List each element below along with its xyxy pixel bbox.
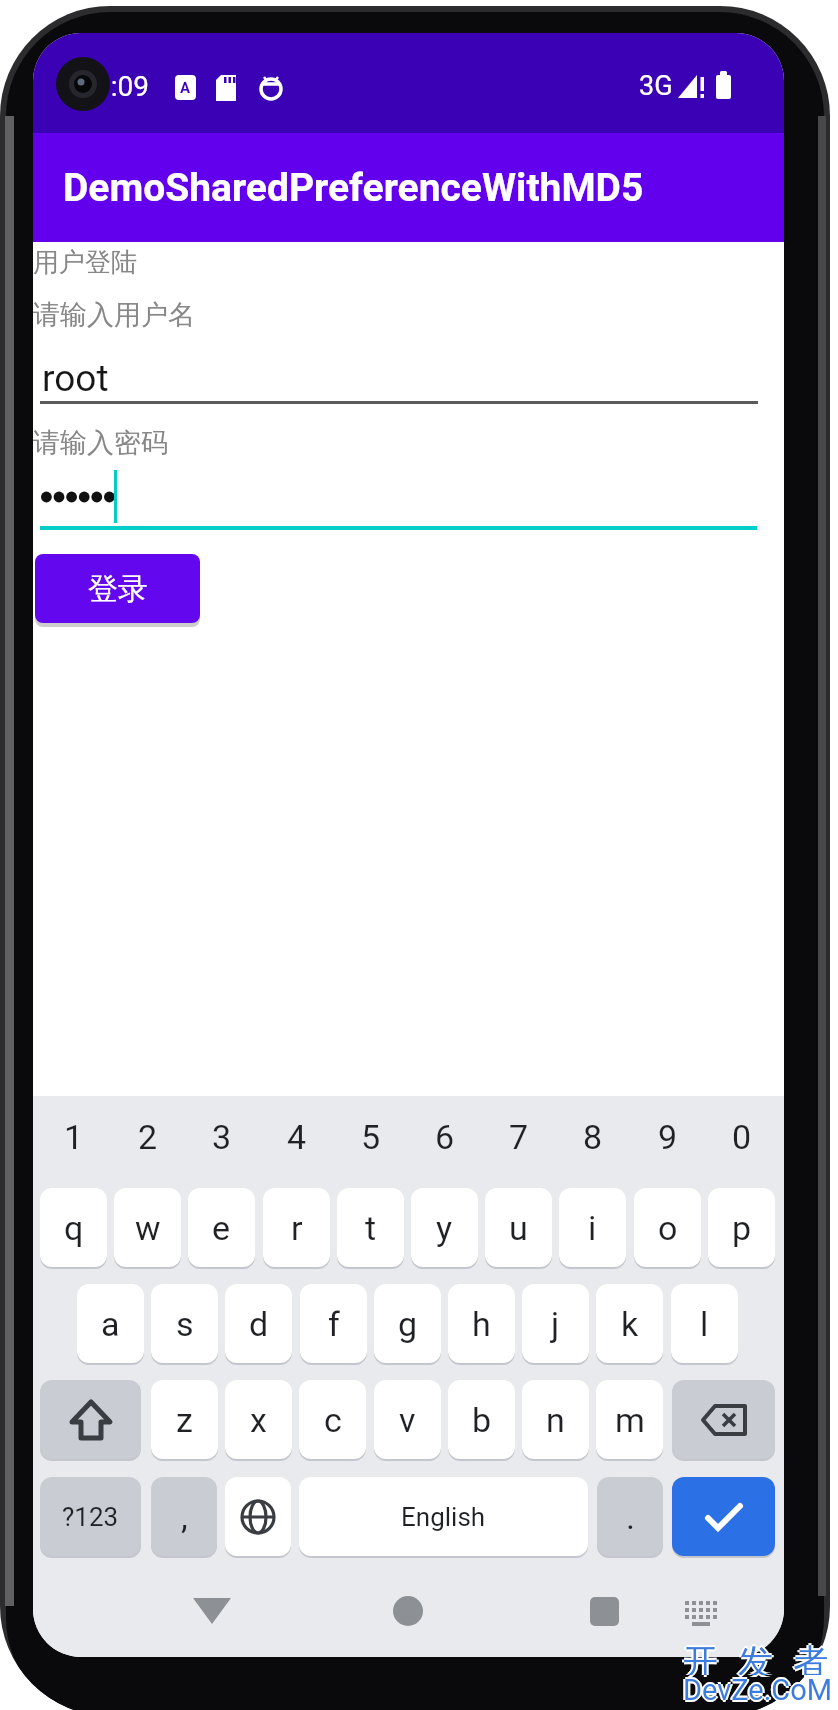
button[interactable]: 3 — [185, 1117, 259, 1155]
button[interactable]: z — [151, 1380, 218, 1459]
staticText: 4 — [287, 1117, 307, 1155]
staticText: 3 — [212, 1117, 232, 1155]
button[interactable]: o — [634, 1188, 701, 1267]
button[interactable]: 6 — [408, 1117, 482, 1155]
staticText: DevZe.CoM — [683, 1675, 833, 1709]
button[interactable]: r — [263, 1188, 330, 1267]
staticText: b — [472, 1400, 492, 1440]
staticText: h — [472, 1304, 491, 1344]
button[interactable]: English — [299, 1477, 588, 1556]
staticText: 开 发 者 — [681, 1637, 832, 1675]
staticText: c — [324, 1400, 342, 1440]
staticText: l — [700, 1304, 709, 1344]
staticText: DemoSharedPreferenceWithMD5 — [63, 165, 644, 211]
staticText: z — [176, 1400, 193, 1440]
button[interactable]: s — [151, 1284, 218, 1363]
staticText: DevZe.CoM — [683, 1673, 833, 1707]
button[interactable] — [40, 1380, 141, 1459]
staticText: w — [135, 1208, 161, 1248]
button[interactable]: x — [225, 1380, 292, 1459]
staticText: o — [658, 1208, 678, 1248]
button[interactable]: b — [448, 1380, 515, 1459]
button[interactable]: 7 — [482, 1117, 556, 1155]
button[interactable]: 8 — [556, 1117, 630, 1155]
button[interactable]: ?123 — [40, 1477, 141, 1556]
staticText: v — [399, 1400, 416, 1440]
staticText: t — [365, 1208, 377, 1248]
staticText: 开 发 者 — [683, 1639, 834, 1677]
button[interactable] — [40, 351, 758, 404]
button[interactable]: y — [411, 1188, 478, 1267]
button[interactable]: a — [77, 1284, 144, 1363]
button[interactable]: m — [596, 1380, 663, 1459]
button[interactable]: p — [708, 1188, 775, 1267]
staticText: DevZe.CoM — [681, 1673, 831, 1707]
staticText: English — [401, 1502, 486, 1532]
button[interactable]: n — [522, 1380, 589, 1459]
staticText: 开 发 者 — [683, 1635, 834, 1673]
staticText: p — [732, 1208, 752, 1248]
button[interactable]: . — [597, 1477, 663, 1556]
staticText: 5 — [361, 1117, 381, 1155]
staticText: , — [181, 1497, 188, 1537]
staticText: s — [176, 1304, 194, 1344]
button[interactable]: g — [374, 1284, 441, 1363]
staticText: f — [328, 1304, 340, 1344]
button[interactable] — [672, 1477, 775, 1556]
staticText: 3G — [639, 70, 673, 102]
staticText: DevZe.CoM — [685, 1673, 835, 1707]
button[interactable]: 9 — [631, 1117, 705, 1155]
staticText: 请输入密码 — [33, 426, 168, 456]
staticText: a — [101, 1304, 120, 1344]
button[interactable]: 4 — [260, 1117, 334, 1155]
button[interactable]: e — [188, 1188, 255, 1267]
button[interactable] — [192, 1597, 232, 1625]
button[interactable]: h — [448, 1284, 515, 1363]
button[interactable]: f — [300, 1284, 367, 1363]
button[interactable]: v — [374, 1380, 441, 1459]
button[interactable]: 登录 — [35, 554, 200, 623]
button[interactable] — [590, 1597, 619, 1626]
button[interactable]: i — [559, 1188, 626, 1267]
button[interactable]: j — [522, 1284, 589, 1363]
staticText: d — [249, 1304, 269, 1344]
button[interactable]: q — [40, 1188, 107, 1267]
staticText: g — [398, 1304, 418, 1344]
staticText: A — [180, 79, 191, 97]
button[interactable] — [683, 1599, 719, 1627]
staticText: 1:09 — [95, 70, 149, 103]
button[interactable]: 0 — [705, 1117, 779, 1155]
button[interactable] — [225, 1477, 291, 1556]
button[interactable]: u — [485, 1188, 552, 1267]
button[interactable]: 5 — [334, 1117, 408, 1155]
staticText: 7 — [509, 1117, 529, 1155]
button[interactable]: l — [671, 1284, 738, 1363]
staticText: j — [551, 1304, 560, 1344]
staticText: m — [615, 1400, 645, 1440]
button[interactable] — [393, 1596, 423, 1626]
staticText: 6 — [435, 1117, 455, 1155]
staticText: root — [42, 357, 109, 400]
button[interactable]: 2 — [111, 1117, 185, 1155]
button[interactable]: k — [596, 1284, 663, 1363]
button[interactable]: c — [299, 1380, 366, 1459]
staticText: x — [250, 1400, 267, 1440]
button[interactable]: t — [337, 1188, 404, 1267]
button[interactable]: d — [225, 1284, 292, 1363]
staticText: u — [509, 1208, 528, 1248]
staticText: 2 — [138, 1117, 158, 1155]
button[interactable] — [40, 468, 757, 530]
button[interactable]: w — [114, 1188, 181, 1267]
button[interactable]: 1 — [37, 1117, 111, 1155]
staticText: 用户登陆 — [33, 246, 137, 276]
staticText: 登录 — [88, 570, 148, 608]
staticText: DevZe.CoM — [683, 1671, 833, 1705]
staticText: r — [291, 1208, 303, 1248]
staticText: k — [621, 1304, 639, 1344]
staticText: 9 — [658, 1117, 678, 1155]
button[interactable] — [672, 1380, 775, 1459]
staticText: 开 发 者 — [683, 1637, 834, 1675]
staticText: e — [212, 1208, 231, 1248]
button[interactable]: , — [151, 1477, 217, 1556]
staticText: q — [64, 1208, 84, 1248]
